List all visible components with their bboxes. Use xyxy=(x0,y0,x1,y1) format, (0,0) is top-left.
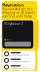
button[interactable] xyxy=(2,64,35,70)
button[interactable] xyxy=(2,57,35,64)
button[interactable]: PlayStation 5 xyxy=(2,20,33,48)
staticText: Slim • 1TB xyxy=(4,26,10,28)
staticText: shipping on all orders xyxy=(2,11,34,15)
staticText: Buy now and get free xyxy=(2,7,33,11)
staticText: Playstation xyxy=(2,2,24,7)
button[interactable] xyxy=(2,50,35,57)
staticText: PlayStation 5 xyxy=(4,22,23,26)
staticText: over $50 until friday xyxy=(2,15,31,18)
